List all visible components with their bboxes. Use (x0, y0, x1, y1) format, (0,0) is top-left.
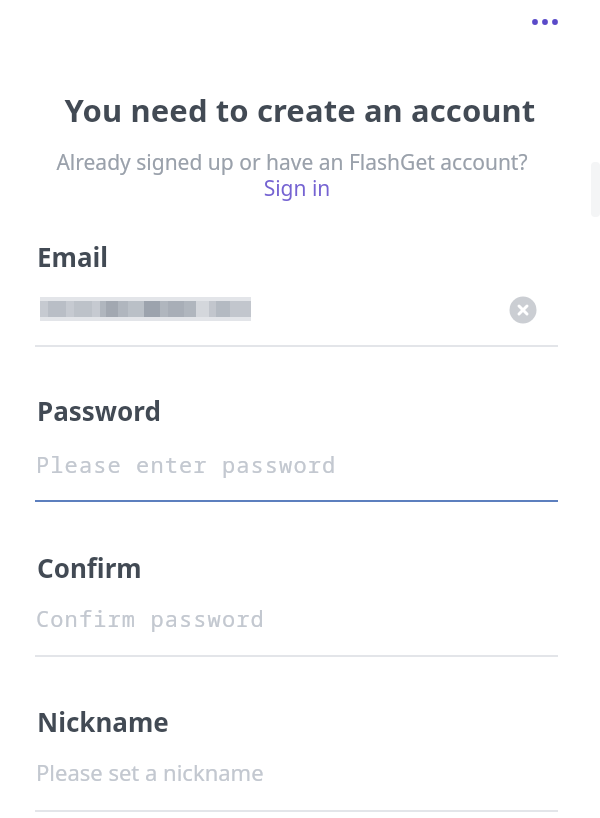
button[interactable]: Sign in (252, 174, 342, 202)
staticText: Password (37, 393, 161, 428)
staticText: Confirm password (36, 603, 265, 633)
staticText: Nickname (37, 704, 169, 739)
staticText: Already signed up or have an FlashGet ac… (0, 148, 592, 177)
staticText: Please set a nickname (36, 757, 264, 787)
staticText: Email (37, 239, 109, 274)
staticText: Confirm (37, 550, 142, 585)
button[interactable] (509, 296, 537, 324)
staticText: You need to create an account (0, 89, 600, 131)
button[interactable] (525, 10, 565, 34)
staticText: Please enter password (36, 449, 337, 479)
staticText: Sign in (252, 174, 342, 202)
